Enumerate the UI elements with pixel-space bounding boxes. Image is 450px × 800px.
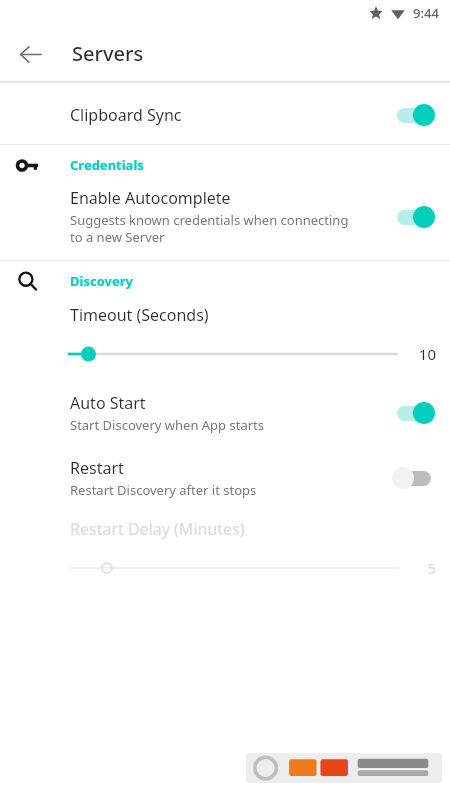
staticText: Clipboard Sync [70, 104, 182, 126]
staticText: 10 [410, 344, 436, 364]
staticText: Suggests known credentials when connecti… [70, 211, 349, 246]
button[interactable]: Back [8, 32, 52, 76]
staticText: Servers [72, 40, 144, 67]
staticText: Start Discovery when App starts [70, 416, 264, 434]
staticText: Discovery [70, 272, 133, 290]
staticText: Auto Start [70, 392, 146, 414]
button[interactable]: Clipboard Sync [0, 91, 450, 138]
staticText: Restart [70, 457, 124, 479]
staticText: Restart Delay (Minutes) [70, 518, 245, 540]
button[interactable]: Auto Start [0, 385, 450, 441]
staticText: Timeout (Seconds) [70, 304, 209, 326]
staticText: 5 [410, 558, 436, 578]
button[interactable]: Enable Autocomplete [0, 185, 450, 248]
staticText: Credentials [70, 156, 144, 174]
staticText: Enable Autocomplete [70, 187, 231, 209]
staticText: Restart Discovery after it stops [70, 481, 257, 499]
button[interactable]: Timeout (Seconds) [0, 301, 450, 365]
staticText: 9:44 [413, 4, 439, 22]
button[interactable]: Restart Delay (Minutes) [0, 515, 450, 579]
button[interactable]: Restart [0, 450, 450, 506]
